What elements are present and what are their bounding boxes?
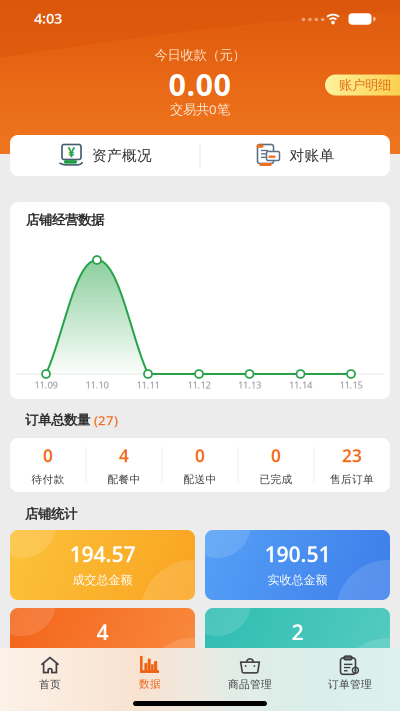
staticText: 4 [119,444,129,467]
staticText: 11.15 [339,379,362,391]
staticText: 待付款 [31,473,64,486]
staticText: 11.13 [238,379,261,391]
staticText: 实收总金额 [267,573,327,587]
staticText: 订单总数量 [25,412,90,428]
button[interactable]: 194.57 [10,530,195,600]
staticText: 194.57 [69,540,135,568]
staticText: 11.09 [34,379,57,391]
button[interactable]: 对账单 [200,135,390,176]
button[interactable]: 订单管理 [300,653,400,693]
button[interactable]: 0 [162,438,238,492]
button[interactable]: 0 [10,438,86,492]
staticText: 已完成 [259,473,292,486]
button[interactable]: 4 [86,438,162,492]
staticText: 订单管理 [328,678,372,691]
staticText: 0 [271,444,281,467]
staticText: 店铺统计 [25,506,77,522]
staticText: 商品管理 [228,678,272,691]
staticText: 成交总金额 [72,573,132,587]
button[interactable]: 190.51 [205,530,390,600]
button[interactable]: 账户明细 [0,0,400,154]
button[interactable]: 数据 [100,653,200,693]
staticText: 资产概况 [92,146,152,164]
staticText: 今日收款（元） [154,47,245,63]
staticText: 0 [195,444,205,467]
staticText: 交易共0笔 [170,100,230,118]
staticText: 账户明细 [339,77,391,93]
staticText: 对账单 [289,146,334,164]
staticText: 首页 [39,678,61,691]
staticText: 11.12 [187,379,210,391]
button[interactable]: 4 [10,608,195,678]
button[interactable]: ¥ [10,135,200,176]
staticText: 2 [291,618,303,646]
staticText: 数据 [139,677,161,690]
staticText: 11.14 [289,379,312,391]
staticText: 0 [43,444,53,467]
staticText: 4 [96,618,108,646]
staticText: 配送中 [183,473,216,486]
button[interactable]: 2 [205,608,390,678]
staticText: 售后订单 [330,473,374,486]
staticText: 190.51 [264,540,330,568]
button[interactable]: 商品管理 [200,653,300,693]
staticText: 11.10 [85,379,108,391]
staticText: 4:03 [34,8,62,28]
staticText: ¥ [67,143,75,161]
staticText: 11.11 [136,379,159,391]
staticText: (27) [94,411,118,429]
staticText: 配餐中 [107,473,140,486]
staticText: 店铺经营数据 [26,212,104,228]
button[interactable]: 0 [238,438,314,492]
button[interactable]: 23 [314,438,390,492]
button[interactable]: 首页 [0,653,100,693]
staticText: 23 [342,444,362,467]
staticText: 0.00 [168,64,231,104]
